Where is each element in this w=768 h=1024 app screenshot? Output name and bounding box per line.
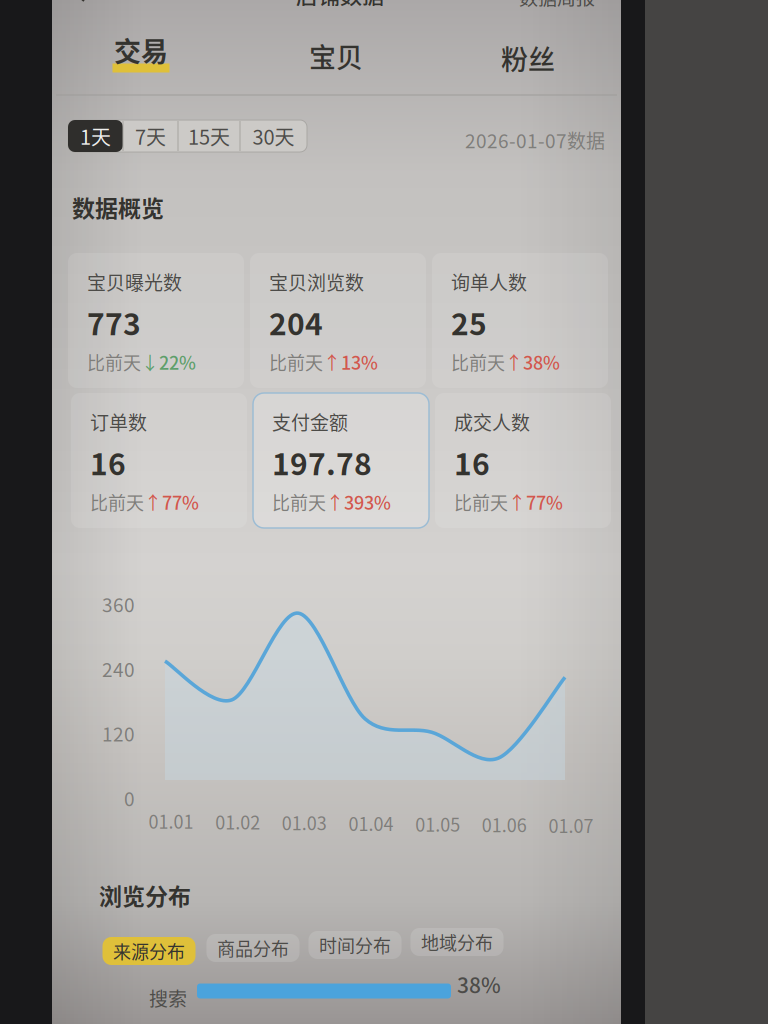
staticText: 2026-01-07数据 (465, 126, 605, 154)
staticText: 38% (457, 969, 501, 999)
staticText: 1天 (80, 121, 111, 150)
staticText: 比前天 (454, 489, 508, 515)
staticText: 773 (87, 300, 141, 344)
staticText: 01.03 (282, 809, 327, 835)
staticText: 25 (451, 300, 487, 344)
button[interactable]: 成交人数 (435, 393, 611, 528)
button[interactable]: 地域分布 (410, 928, 503, 956)
staticText: 77% (526, 489, 563, 515)
staticText: 比前天 (269, 349, 323, 375)
button[interactable]: 7天 (123, 120, 178, 152)
staticText: 比前天 (87, 349, 141, 375)
staticText: 13% (341, 349, 378, 375)
staticText: 数据概览 (72, 190, 164, 224)
button[interactable]: 来源分布 (102, 937, 195, 965)
button[interactable]: 宝贝浏览数 (250, 253, 426, 388)
staticText: 22% (159, 349, 196, 375)
staticText: 204 (269, 300, 323, 344)
staticText: 01.07 (548, 812, 593, 838)
button[interactable]: 30天 (240, 120, 307, 152)
button[interactable]: 商品分布 (206, 934, 299, 962)
button[interactable]: 订单数 (71, 393, 247, 528)
staticText: ↑ (326, 489, 344, 515)
staticText: 360 (102, 590, 135, 618)
staticText: 宝贝 (309, 36, 363, 76)
staticText: ↑ (508, 489, 526, 515)
button[interactable]: 粉丝 (453, 30, 603, 86)
button[interactable]: 宝贝 (261, 28, 411, 84)
staticText: 240 (102, 655, 135, 682)
staticText: 15天 (188, 121, 230, 150)
button[interactable]: 时间分布 (308, 931, 401, 959)
staticText: 38% (523, 349, 560, 375)
staticText: 支付金额 (272, 408, 348, 435)
staticText: 比前天 (90, 489, 144, 515)
button[interactable]: 返回 (69, 0, 91, 5)
staticText: 0 (124, 784, 135, 812)
staticText: 16 (454, 440, 490, 484)
staticText: 交易 (114, 30, 168, 70)
staticText: 订单数 (90, 408, 147, 435)
staticText: 01.05 (415, 811, 460, 837)
staticText: 地域分布 (421, 929, 493, 955)
button[interactable]: 1天 (68, 120, 123, 152)
staticText: 393% (344, 489, 391, 515)
staticText: 搜索 (149, 984, 187, 1012)
staticText: 成交人数 (454, 408, 530, 435)
button[interactable]: 店铺数据 (280, 0, 400, 7)
staticText: 01.01 (148, 808, 193, 834)
staticText: 粉丝 (501, 38, 555, 78)
staticText: 120 (102, 720, 135, 747)
staticText: ↑ (323, 349, 341, 375)
staticText: ↓ (141, 349, 159, 375)
staticText: ↑ (505, 349, 523, 375)
button[interactable]: 交易 (66, 28, 216, 84)
staticText: 比前天 (451, 349, 505, 375)
button[interactable]: 询单人数 (432, 253, 608, 388)
staticText: 16 (90, 440, 126, 484)
staticText: 商品分布 (217, 935, 289, 961)
button[interactable]: 数据周报 (514, 0, 600, 9)
staticText: 01.02 (215, 809, 260, 835)
staticText: 数据周报 (519, 0, 595, 11)
button[interactable]: 宝贝曝光数 (68, 253, 244, 388)
staticText: 询单人数 (451, 268, 527, 295)
staticText: 01.06 (482, 811, 527, 838)
staticText: 197.78 (272, 440, 372, 484)
button[interactable]: 支付金额 (253, 393, 429, 528)
staticText: 来源分布 (113, 938, 185, 964)
staticText: 店铺数据 (296, 0, 384, 10)
staticText: 77% (162, 489, 199, 515)
staticText: ↑ (144, 489, 162, 515)
staticText: 30天 (252, 121, 294, 150)
button[interactable]: 15天 (178, 120, 240, 152)
staticText: 7天 (135, 121, 166, 150)
staticText: 01.04 (348, 810, 393, 836)
staticText: 宝贝浏览数 (269, 268, 364, 295)
staticText: 时间分布 (319, 932, 391, 958)
staticText: 浏览分布 (99, 878, 191, 912)
staticText: 宝贝曝光数 (87, 268, 182, 295)
staticText: 比前天 (272, 489, 326, 515)
